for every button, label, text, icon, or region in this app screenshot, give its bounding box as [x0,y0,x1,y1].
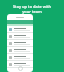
button[interactable]: Home [18,66,23,71]
staticText: Stay up to date with your team [8,4,56,14]
button[interactable] [7,61,33,67]
button[interactable] [7,26,33,32]
button[interactable] [7,54,33,60]
button[interactable] [7,40,33,46]
button[interactable] [7,33,33,39]
button[interactable] [7,47,33,53]
